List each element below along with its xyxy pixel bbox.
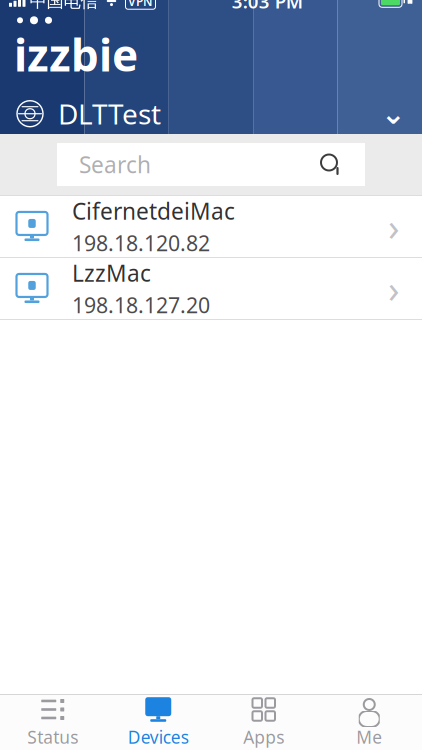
- staticText: Search: [79, 149, 151, 179]
- staticText: Devices: [128, 725, 189, 748]
- staticText: 198.18.120.82: [72, 229, 210, 257]
- button[interactable]: Devices: [105, 695, 211, 749]
- staticText: ⌄: [381, 97, 406, 130]
- staticText: izzbie: [14, 25, 138, 84]
- staticText: DLTTest: [58, 95, 161, 132]
- button[interactable]: [0, 196, 422, 258]
- button[interactable]: [0, 258, 422, 320]
- staticText: CifernetdeiMac: [72, 196, 235, 226]
- button[interactable]: Apps: [211, 695, 316, 749]
- staticText: Apps: [243, 725, 284, 748]
- staticText: 3:03 PM: [232, 0, 303, 14]
- button[interactable]: Me: [316, 695, 422, 749]
- button[interactable]: Search: [57, 143, 365, 186]
- staticText: 198.18.127.20: [72, 291, 210, 319]
- staticText: 中国电信: [29, 0, 97, 12]
- staticText: LzzMac: [72, 258, 151, 288]
- staticText: ›: [388, 202, 400, 251]
- button[interactable]: DLTTest: [0, 92, 422, 136]
- button[interactable]: Status: [0, 695, 105, 749]
- staticText: ›: [388, 264, 400, 313]
- staticText: Me: [356, 725, 382, 748]
- staticText: Status: [27, 725, 78, 748]
- staticText: VPN: [128, 0, 153, 9]
